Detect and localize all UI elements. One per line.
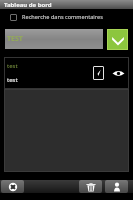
button[interactable]: Voir xyxy=(111,66,126,81)
button[interactable]: TEST xyxy=(5,29,103,49)
staticText: Recherche dans commentaires xyxy=(22,13,103,21)
staticText: test xyxy=(7,76,18,84)
staticText: TEST xyxy=(7,34,23,44)
staticText: Tableau de bord xyxy=(4,1,52,9)
button[interactable]: Ajouter xyxy=(1,180,24,193)
button[interactable]: Supprimer xyxy=(79,180,102,193)
button[interactable]: Tableau de bord xyxy=(0,0,133,9)
button[interactable]: Valider la recherche xyxy=(108,30,127,49)
button[interactable]: Recherche dans commentaires xyxy=(0,11,133,23)
button[interactable]: Profil xyxy=(105,180,128,193)
button[interactable]: Modifier xyxy=(93,66,104,80)
button[interactable]: test xyxy=(4,57,129,89)
staticText: test xyxy=(7,62,18,70)
